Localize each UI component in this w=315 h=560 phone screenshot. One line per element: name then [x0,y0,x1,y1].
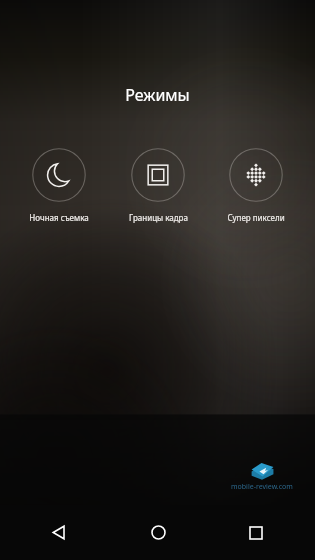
staticText: mobile-review.com [231,482,293,492]
button[interactable]: Супер пиксели [211,146,301,225]
other: Супер пиксели [243,162,269,188]
staticText: Режимы [0,84,315,106]
button[interactable]: Ночная съемка [14,146,104,225]
other: Ночная съемка [46,162,72,188]
other: Границы кадра [146,163,170,187]
staticText: Границы кадра [129,212,188,223]
button[interactable]: Home [118,505,198,560]
staticText: Ночная съемка [29,212,89,223]
button[interactable]: Recents [216,505,296,560]
button[interactable]: Границы кадра [113,146,203,225]
staticText: Супер пиксели [227,212,285,223]
button[interactable]: Back [19,505,99,560]
